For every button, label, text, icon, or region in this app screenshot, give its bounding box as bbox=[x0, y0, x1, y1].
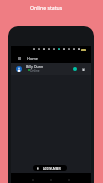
button[interactable]: Delete bbox=[80, 66, 86, 72]
button[interactable]: ADD NUMBER bbox=[33, 165, 67, 171]
button[interactable]: Back bbox=[29, 176, 37, 183]
button[interactable]: Recent apps bbox=[65, 176, 73, 183]
button[interactable]: Open navigation menu bbox=[16, 55, 22, 61]
staticText: Billy Dunn bbox=[26, 64, 44, 69]
staticText: Home bbox=[27, 56, 39, 61]
button[interactable]: Home bbox=[47, 176, 55, 183]
staticText: Online bbox=[30, 69, 40, 73]
staticText: Online status bbox=[30, 4, 63, 11]
button[interactable]: Billy Dunn bbox=[11, 63, 91, 75]
staticText: ADD NUMBER bbox=[43, 167, 61, 171]
